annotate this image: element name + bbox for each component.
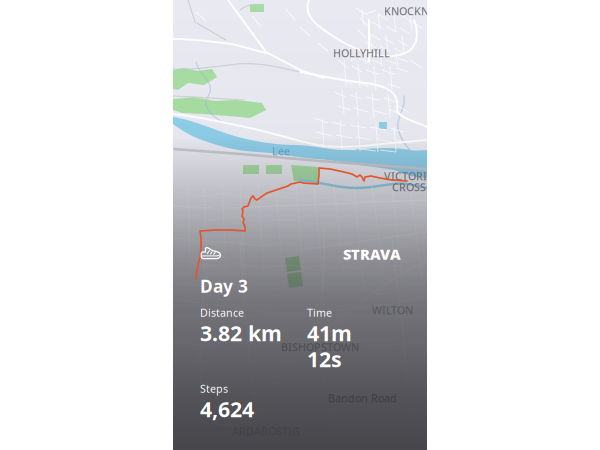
staticText: 12s xyxy=(307,345,342,373)
staticText: HOLLYHILL xyxy=(333,46,390,60)
staticText: VICTORIA xyxy=(384,169,434,183)
staticText: WILTON xyxy=(372,303,413,317)
staticText: ARDAROSTIG xyxy=(232,424,300,438)
staticText: CROSS xyxy=(392,180,426,194)
staticText: Distance xyxy=(200,305,244,320)
staticText: 41m xyxy=(307,319,352,347)
staticText: 4,624 xyxy=(200,395,254,423)
staticText: 3.82 km xyxy=(200,319,282,347)
staticText: BISHOPSTOWN xyxy=(281,340,359,354)
staticText: Day 3 xyxy=(200,274,248,297)
staticText: Lee xyxy=(272,144,290,158)
staticText: Time xyxy=(307,305,332,320)
staticText: Steps xyxy=(200,381,228,396)
staticText: KNOCKN xyxy=(384,4,429,18)
staticText: STRAVA xyxy=(343,244,401,264)
staticText: Bandon Road xyxy=(328,391,397,405)
